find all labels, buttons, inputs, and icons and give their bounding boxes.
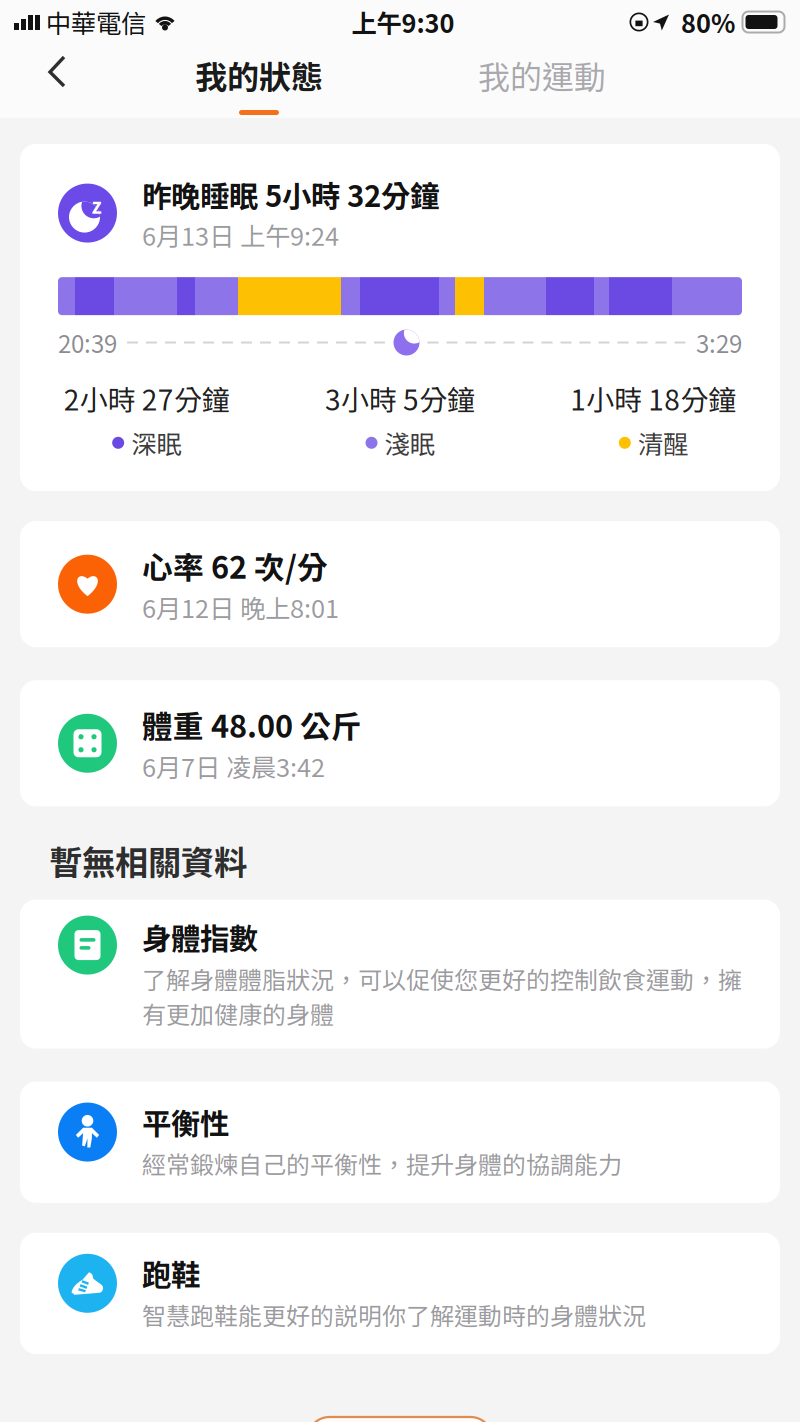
staticText: 平衡性	[142, 1101, 229, 1143]
button[interactable]: 跑鞋	[20, 1233, 780, 1354]
button[interactable]: 平衡性	[20, 1082, 780, 1203]
button[interactable]: Back	[0, 36, 90, 110]
button[interactable]: 體重 48.00 公斤	[20, 680, 780, 806]
staticText: 心率 62 次/分	[142, 543, 328, 587]
staticText: 6月13日 上午9:24	[142, 216, 339, 253]
staticText: 昨晚睡眠 5小時 32分鐘	[142, 173, 439, 215]
button[interactable]: 身體指數	[20, 900, 780, 1049]
staticText: 淺眠	[384, 424, 434, 461]
staticText: 上午9:30	[351, 4, 454, 40]
staticText: 20:39	[58, 325, 117, 360]
button[interactable]: 我的狀態	[159, 36, 359, 110]
staticText: 1小時 18分鐘	[570, 378, 736, 418]
staticText: 6月7日 凌晨3:42	[142, 748, 325, 784]
staticText: 體重 48.00 公斤	[142, 702, 362, 747]
staticText: 80%	[675, 4, 741, 40]
staticText: 經常鍛煉自己的平衡性，提升身體的協調能力	[142, 1146, 622, 1181]
staticText: 身體指數	[142, 916, 258, 958]
staticText: 3小時 5分鐘	[325, 378, 475, 418]
staticText: 跑鞋	[142, 1252, 200, 1294]
staticText: 了解身體體脂狀況，可以促使您更好的控制飲食運動，擁有更加健康的身體	[142, 961, 742, 1031]
staticText: 我的運動	[478, 52, 606, 98]
button[interactable]: 心率 62 次/分	[20, 521, 780, 647]
staticText: 2小時 27分鐘	[64, 378, 230, 418]
staticText: 3:29	[696, 325, 742, 360]
staticText: 暫無相關資料	[49, 836, 247, 885]
staticText: 6月12日 晚上8:01	[142, 588, 339, 625]
button[interactable]: 我的運動	[442, 36, 642, 126]
staticText: z	[91, 191, 101, 220]
staticText: 清醒	[638, 424, 688, 461]
staticText: 我的狀態	[195, 52, 323, 98]
button[interactable]	[307, 1417, 492, 1422]
staticText: 中華電信	[40, 4, 152, 40]
staticText: 深眠	[131, 424, 181, 461]
staticText: 智慧跑鞋能更好的説明你了解運動時的身體狀況	[142, 1297, 646, 1332]
